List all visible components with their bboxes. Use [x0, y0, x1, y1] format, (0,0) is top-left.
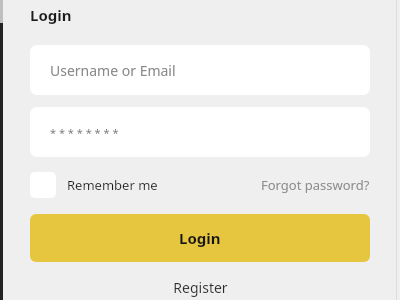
staticText: Forgot password?	[261, 176, 370, 194]
staticText: Login	[30, 5, 72, 25]
staticText: Remember me	[67, 176, 158, 194]
button[interactable]: Forgot password?	[261, 176, 370, 194]
staticText: Register	[173, 278, 228, 297]
staticText: Login	[179, 228, 221, 248]
button[interactable]: Register	[30, 274, 370, 300]
button[interactable]: Username or Email	[30, 45, 370, 95]
staticText: Username or Email	[50, 61, 176, 80]
button[interactable]: Remember me	[30, 172, 162, 198]
button[interactable]: Login	[30, 214, 370, 262]
staticText: * * * * * * * *	[50, 125, 119, 140]
button[interactable]: * * * * * * * *	[30, 107, 370, 157]
